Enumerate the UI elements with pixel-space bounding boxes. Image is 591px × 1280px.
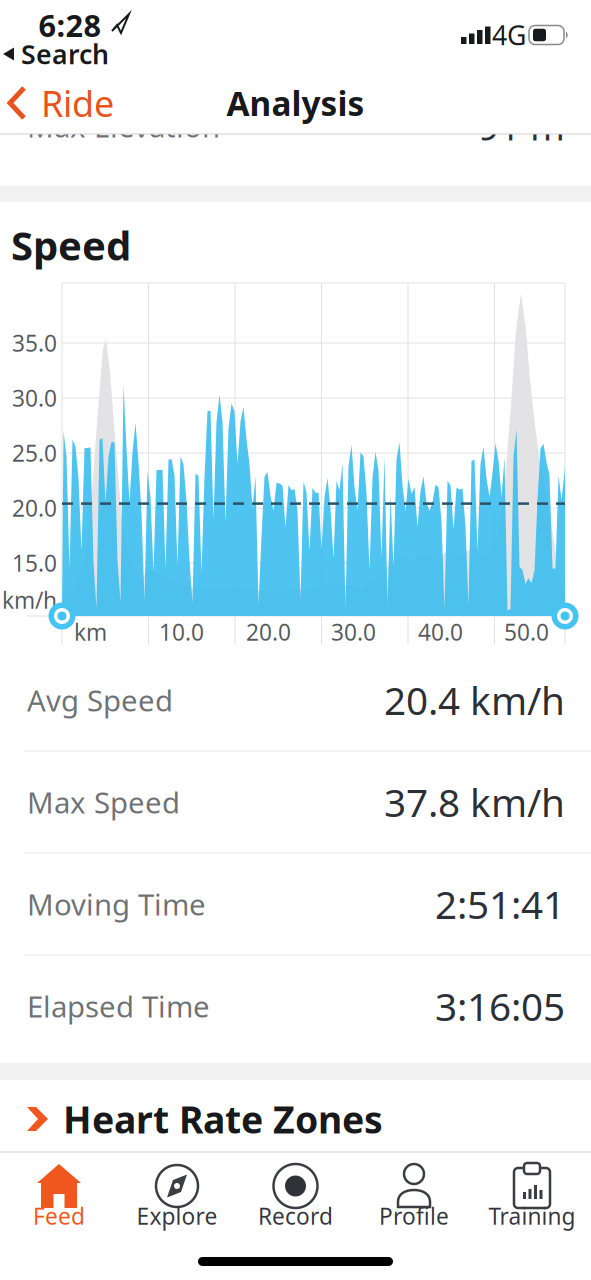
staticText: Avg Speed (27, 680, 173, 719)
button[interactable]: Range end (551, 602, 578, 629)
button[interactable]: Explore (122, 1153, 232, 1245)
staticText: Moving Time (27, 884, 206, 923)
button[interactable]: Heart Rate Zones (0, 1087, 591, 1151)
staticText: 30.0 (331, 617, 376, 647)
staticText: km (74, 617, 107, 647)
staticText: Training (488, 1201, 575, 1231)
staticText: 25.0 (12, 438, 57, 468)
staticText: 15.0 (12, 548, 57, 578)
staticText: Elapsed Time (27, 986, 210, 1025)
staticText: 3:16:05 (435, 980, 565, 1032)
staticText: 37.8 km/h (384, 776, 565, 828)
staticText: 35.0 (12, 328, 57, 358)
button[interactable]: Record (240, 1153, 350, 1245)
staticText: 91 m (478, 101, 565, 151)
staticText: Heart Rate Zones (63, 1094, 383, 1144)
staticText: Search (21, 36, 109, 72)
staticText: 20.0 (12, 493, 57, 523)
staticText: 20.0 (246, 617, 291, 647)
staticText: km/h (2, 585, 57, 615)
staticText: 2:51:41 (435, 878, 565, 930)
staticText: 20.4 km/h (384, 674, 565, 726)
staticText: Max Speed (27, 782, 180, 821)
staticText: Profile (379, 1201, 449, 1231)
button[interactable]: Profile (359, 1153, 469, 1245)
button[interactable]: Back (8, 81, 114, 125)
staticText: Ride (41, 79, 114, 127)
staticText: Record (258, 1201, 333, 1231)
button[interactable]: Training (477, 1153, 587, 1245)
staticText: 50.0 (504, 617, 549, 647)
staticText: Max Elevation (27, 106, 220, 145)
staticText: Explore (136, 1201, 217, 1231)
staticText: Feed (33, 1201, 85, 1231)
staticText: 6:28 (38, 5, 101, 45)
staticText: Analysis (226, 81, 364, 125)
staticText: 4G (492, 17, 526, 53)
staticText: 40.0 (418, 617, 463, 647)
button[interactable]: Range start (48, 602, 75, 629)
button[interactable]: Feed (4, 1153, 114, 1245)
staticText: Speed (11, 218, 131, 271)
button[interactable]: Back to Search (3, 42, 109, 66)
staticText: 30.0 (12, 383, 57, 413)
staticText: 10.0 (159, 617, 204, 647)
